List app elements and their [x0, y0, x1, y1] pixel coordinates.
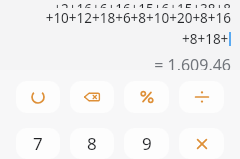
button[interactable]: 7: [16, 128, 60, 159]
button[interactable]: Multiply: [179, 128, 224, 159]
button[interactable]: Clear: [16, 81, 60, 113]
staticText: 8: [87, 132, 97, 155]
staticText: 7: [33, 132, 43, 155]
button[interactable]: Divide: [179, 81, 224, 113]
button[interactable]: Backspace: [70, 81, 114, 113]
staticText: +2+16+6+16+15+6+15+38+8: [53, 0, 231, 8]
button[interactable]: Percent: [124, 81, 169, 113]
staticText: +10+12+18+6+8+10+20+8+16: [45, 9, 231, 27]
button[interactable]: 9: [124, 128, 169, 159]
staticText: 9: [142, 132, 152, 155]
button[interactable]: 8: [70, 128, 114, 159]
staticText: +8+18+: [182, 30, 229, 48]
staticText: = 1,609.46: [154, 54, 231, 76]
